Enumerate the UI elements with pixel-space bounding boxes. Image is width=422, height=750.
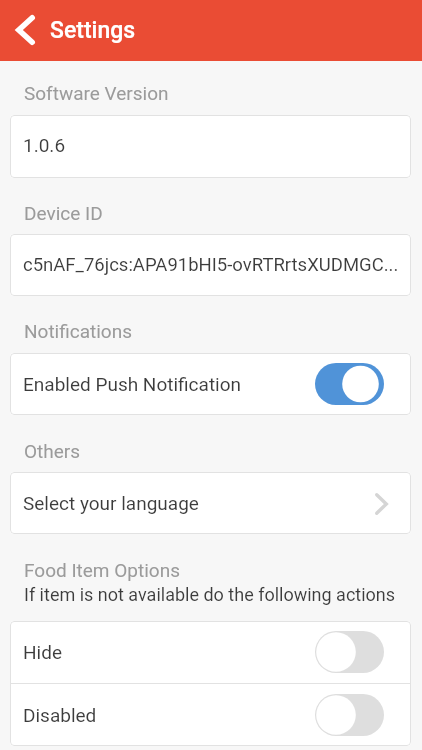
button[interactable]: Hide [10,621,411,683]
button[interactable]: Back [0,0,48,61]
staticText: Device ID [24,202,103,224]
button[interactable]: Enabled Push Notification [10,353,411,415]
staticText: Settings [50,17,136,44]
staticText: Food Item Options [24,559,180,581]
staticText: Software Version [24,82,169,104]
staticText: Disabled [23,704,97,726]
staticText: Notifications [24,320,133,342]
staticText: 1.0.6 [23,134,66,156]
button[interactable]: Select your language [10,472,411,534]
staticText: Hide [23,641,62,663]
staticText: Others [24,440,81,462]
button[interactable]: Disabled [10,684,411,746]
staticText: c5nAF_76jcs:APA91bHI5-ovRTRrtsXUDMGC... [23,254,399,276]
staticText: Enabled Push Notification [23,373,242,395]
staticText: Select your language [23,492,199,514]
staticText: If item is not available do the followin… [24,584,396,605]
